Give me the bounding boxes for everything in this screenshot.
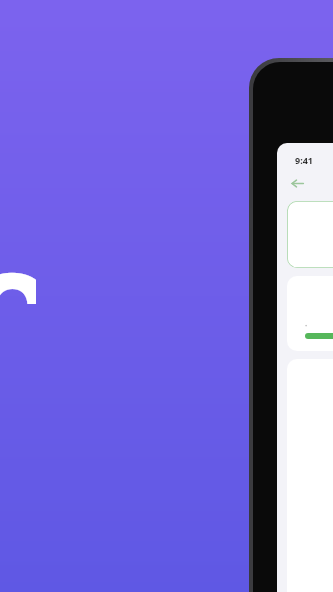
button[interactable]: • — [287, 276, 333, 351]
staticText: 9:41 — [295, 154, 313, 166]
staticText: e — [0, 196, 36, 304]
staticText: • — [305, 322, 308, 330]
button[interactable]: Back — [285, 171, 309, 195]
button[interactable] — [287, 201, 333, 268]
